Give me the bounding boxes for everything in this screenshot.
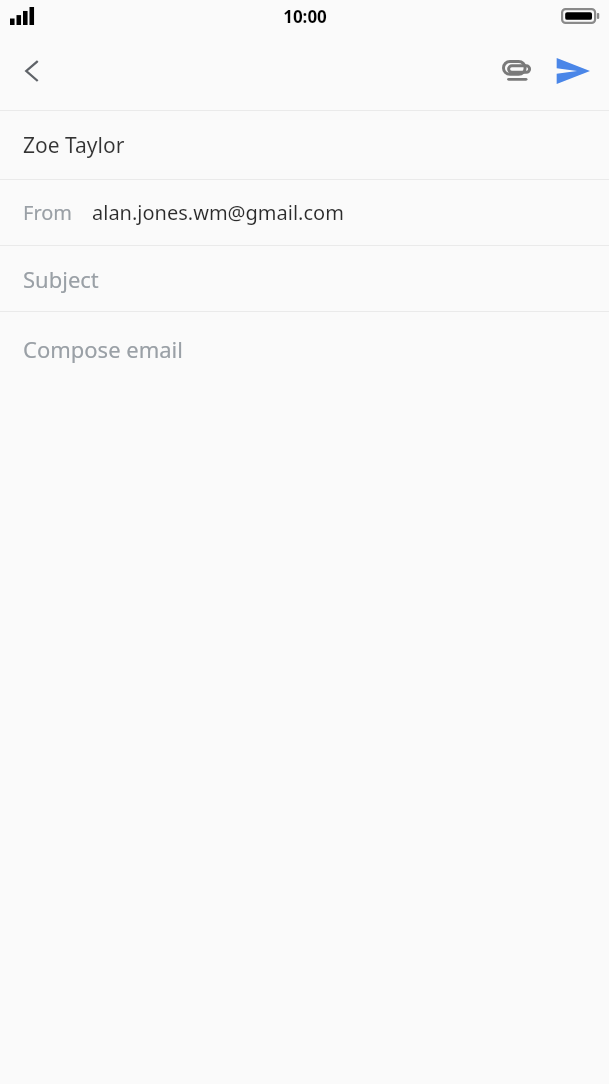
button[interactable]: Subject [0,246,609,311]
staticText: 10:00 [283,5,327,28]
staticText: alan.jones.wm@gmail.com [92,199,344,226]
staticText: Compose email [23,334,183,364]
button[interactable]: Attach file [493,47,541,95]
button[interactable]: Back [8,47,56,95]
button[interactable]: From [0,180,609,245]
staticText: Subject [23,264,99,294]
button[interactable]: Zoe Taylor [0,111,609,179]
button[interactable]: Send [549,47,597,95]
staticText: From [23,199,73,226]
staticText: Zoe Taylor [23,131,125,160]
button[interactable]: Compose email [0,312,609,1084]
